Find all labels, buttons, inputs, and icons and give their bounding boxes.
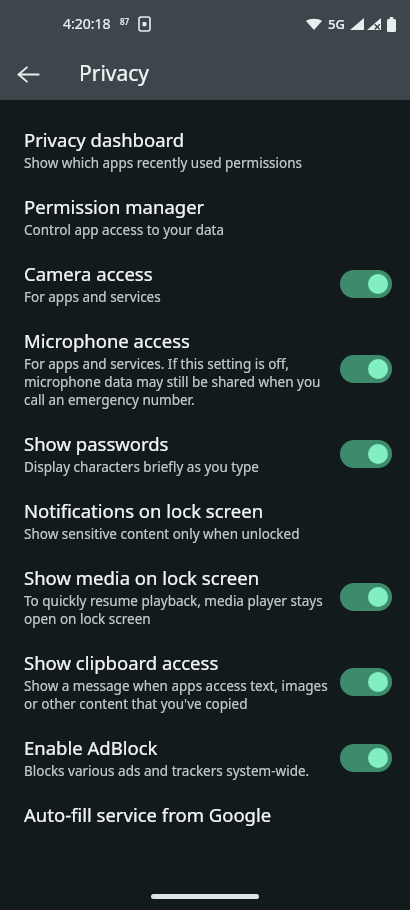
button[interactable]: Permission manager	[0, 185, 410, 252]
staticText: 87	[120, 16, 130, 27]
staticText: For apps and services	[24, 288, 161, 306]
staticText: Auto-fill service from Google	[24, 802, 272, 827]
staticText: Show media on lock screen	[24, 565, 260, 590]
button[interactable]: Camera access	[0, 252, 410, 319]
button[interactable]: Auto-fill service from Google	[0, 793, 410, 840]
staticText: Blocks various ads and trackers system-w…	[24, 762, 310, 780]
staticText: Permission manager	[24, 194, 205, 219]
staticText: Microphone access	[24, 328, 190, 353]
button[interactable]: Toggle	[340, 440, 392, 468]
button[interactable]: Enable AdBlock	[0, 726, 410, 793]
staticText: Show which apps recently used permission…	[24, 154, 303, 172]
button[interactable]: Toggle	[340, 668, 392, 696]
button[interactable]: Show media on lock screen	[0, 556, 410, 641]
button[interactable]: Toggle	[340, 270, 392, 298]
button[interactable]: Notifications on lock screen	[0, 489, 410, 556]
staticText: Camera access	[24, 261, 153, 286]
button[interactable]: Toggle	[340, 583, 392, 611]
staticText: Show clipboard access	[24, 650, 219, 675]
button[interactable]: Privacy dashboard	[0, 118, 410, 185]
staticText: Show sensitive content only when unlocke…	[24, 525, 300, 543]
button[interactable]: Back	[8, 54, 48, 94]
staticText: To quickly resume playback, media player…	[24, 592, 328, 628]
staticText: Show passwords	[24, 431, 169, 456]
staticText: Control app access to your data	[24, 221, 225, 239]
button[interactable]: Toggle	[340, 744, 392, 772]
staticText: Show a message when apps access text, im…	[24, 677, 328, 713]
staticText: Privacy	[79, 59, 150, 88]
staticText: 5G	[328, 15, 345, 33]
staticText: Notifications on lock screen	[24, 498, 264, 523]
button[interactable]: Toggle	[340, 355, 392, 383]
staticText: For apps and services. If this setting i…	[24, 355, 328, 409]
staticText: Display characters briefly as you type	[24, 458, 259, 476]
staticText: Enable AdBlock	[24, 735, 158, 760]
staticText: Privacy dashboard	[24, 127, 185, 152]
button[interactable]: Microphone access	[0, 319, 410, 422]
button[interactable]: Show passwords	[0, 422, 410, 489]
button[interactable]: Show clipboard access	[0, 641, 410, 726]
staticText: 4:20:18	[63, 14, 111, 33]
